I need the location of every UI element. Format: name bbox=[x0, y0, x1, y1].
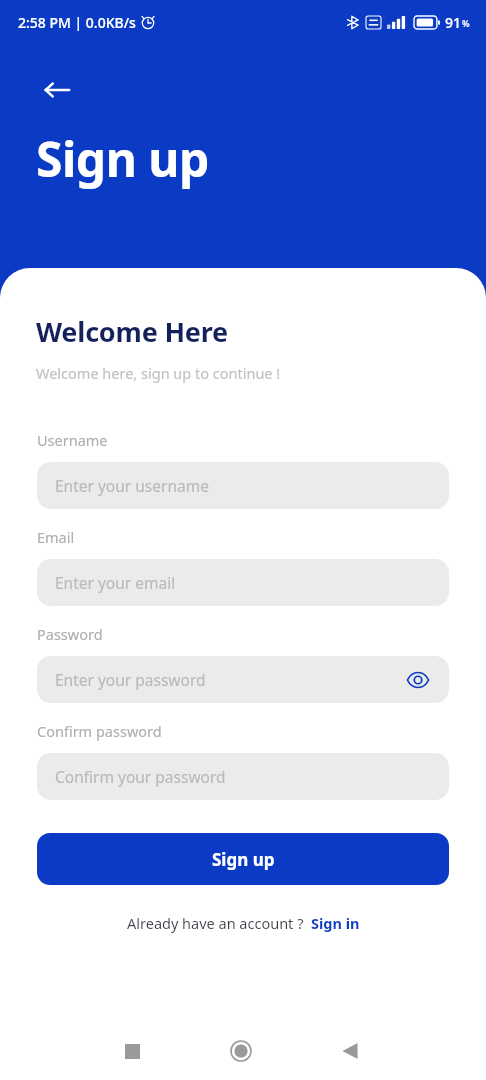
button[interactable]: Enter your username bbox=[37, 462, 449, 509]
button[interactable]: Show password bbox=[403, 665, 433, 695]
button[interactable]: Back bbox=[328, 1029, 372, 1073]
staticText: Username bbox=[37, 430, 108, 450]
staticText: Enter your email bbox=[55, 572, 176, 593]
button[interactable]: Enter your email bbox=[37, 559, 449, 606]
staticText: 2:58 PM | 0.0KB/s bbox=[18, 13, 136, 32]
staticText: Sign up bbox=[36, 126, 209, 191]
staticText: Sign in bbox=[311, 913, 360, 933]
button[interactable]: Confirm your password bbox=[37, 753, 449, 800]
button[interactable]: Recent apps bbox=[110, 1029, 154, 1073]
staticText: Welcome Here bbox=[36, 313, 229, 350]
button[interactable]: Enter your password bbox=[37, 656, 449, 703]
staticText: Confirm your password bbox=[55, 766, 226, 787]
button[interactable]: Sign in bbox=[311, 913, 360, 933]
staticText: Email bbox=[37, 527, 75, 547]
staticText: Already have an account ? bbox=[127, 913, 304, 933]
staticText: Enter your username bbox=[55, 475, 209, 496]
staticText: % bbox=[462, 17, 470, 29]
staticText: Confirm password bbox=[37, 721, 162, 741]
staticText: Welcome here, sign up to continue ! bbox=[36, 363, 281, 383]
staticText: Sign up bbox=[212, 848, 275, 871]
button[interactable]: Sign up bbox=[37, 833, 449, 885]
staticText: Enter your password bbox=[55, 669, 206, 690]
staticText: 91 bbox=[445, 13, 462, 32]
button[interactable]: Home bbox=[219, 1029, 263, 1073]
staticText: Password bbox=[37, 624, 103, 644]
button[interactable]: Back bbox=[33, 66, 81, 114]
